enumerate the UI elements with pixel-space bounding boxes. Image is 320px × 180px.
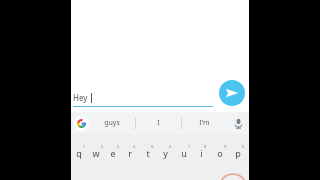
staticText: u xyxy=(181,147,187,159)
button[interactable]: p xyxy=(230,140,248,160)
button[interactable]: t xyxy=(140,140,158,160)
staticText: 3 xyxy=(117,144,120,149)
button[interactable]: i xyxy=(194,140,212,160)
staticText: t xyxy=(146,147,150,159)
staticText: 7 xyxy=(188,144,191,149)
button[interactable]: q xyxy=(72,140,89,160)
staticText: 6 xyxy=(169,144,172,149)
staticText: w xyxy=(92,147,100,159)
button[interactable]: Voice input xyxy=(227,112,249,134)
staticText: 1 xyxy=(83,144,86,149)
button[interactable]: w xyxy=(89,140,106,160)
staticText: r xyxy=(128,147,132,159)
button[interactable]: u xyxy=(176,140,194,160)
staticText: o xyxy=(217,147,223,159)
staticText: guys xyxy=(104,118,120,128)
button[interactable]: Send xyxy=(219,80,245,106)
button[interactable]: Google xyxy=(74,116,89,131)
staticText: I'm xyxy=(199,118,210,128)
staticText: 0 xyxy=(242,144,245,149)
staticText: 5 xyxy=(151,144,154,149)
staticText: q xyxy=(76,147,82,159)
button[interactable]: guys xyxy=(89,112,135,134)
button[interactable]: Hey xyxy=(73,92,213,107)
staticText: p xyxy=(235,147,241,159)
button[interactable]: r xyxy=(123,140,140,160)
staticText: i xyxy=(200,147,203,159)
button[interactable]: I'm xyxy=(182,112,227,134)
staticText: 2 xyxy=(101,144,104,149)
staticText: y xyxy=(163,147,168,159)
button[interactable]: y xyxy=(158,140,176,160)
button[interactable]: o xyxy=(212,140,230,160)
staticText: Hey xyxy=(73,92,88,103)
staticText: I xyxy=(157,118,160,128)
button[interactable]: e xyxy=(106,140,123,160)
staticText: 8 xyxy=(204,144,207,149)
staticText: e xyxy=(110,147,116,159)
staticText: 4 xyxy=(133,144,136,149)
staticText: 9 xyxy=(224,144,227,149)
button[interactable]: I xyxy=(136,112,181,134)
